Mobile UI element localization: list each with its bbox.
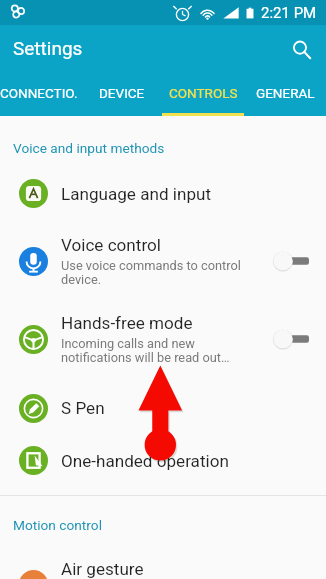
- staticText: One-handed operation: [61, 451, 229, 471]
- staticText: CONTROLS: [169, 85, 238, 101]
- button[interactable]: Hands-free mode: [0, 317, 326, 395]
- staticText: Voice and input methods: [13, 140, 165, 156]
- button[interactable]: GENERAL: [244, 72, 326, 116]
- staticText: Use voice commands to control device.: [61, 258, 241, 287]
- button[interactable]: Air gesture: [0, 541, 326, 579]
- button[interactable]: CONNECTIO..: [0, 72, 81, 116]
- button[interactable]: DEVICE: [81, 72, 162, 116]
- button[interactable]: One-handed operation: [0, 448, 326, 501]
- staticText: Voice control: [61, 235, 161, 255]
- staticText: Motion control: [13, 517, 102, 533]
- staticText: Language and input: [61, 184, 211, 204]
- button[interactable]: Voice control: [0, 239, 326, 317]
- button[interactable]: Search: [283, 31, 319, 67]
- staticText: Incoming calls and new notifications wil…: [61, 336, 230, 365]
- button[interactable]: S Pen: [0, 395, 326, 448]
- staticText: Air gesture: [61, 559, 144, 579]
- staticText: Settings: [13, 37, 83, 59]
- staticText: GENERAL: [256, 85, 315, 101]
- button[interactable]: Toggle off: [268, 245, 314, 277]
- staticText: Hands-free mode: [61, 313, 193, 333]
- button[interactable]: CONTROLS: [162, 72, 244, 116]
- staticText: 2:21 PM: [261, 4, 317, 22]
- staticText: S Pen: [61, 398, 105, 418]
- button[interactable]: Language and input: [0, 186, 326, 239]
- staticText: DEVICE: [99, 85, 145, 101]
- staticText: CONNECTIO..: [0, 85, 81, 101]
- button[interactable]: Toggle off: [268, 323, 314, 355]
